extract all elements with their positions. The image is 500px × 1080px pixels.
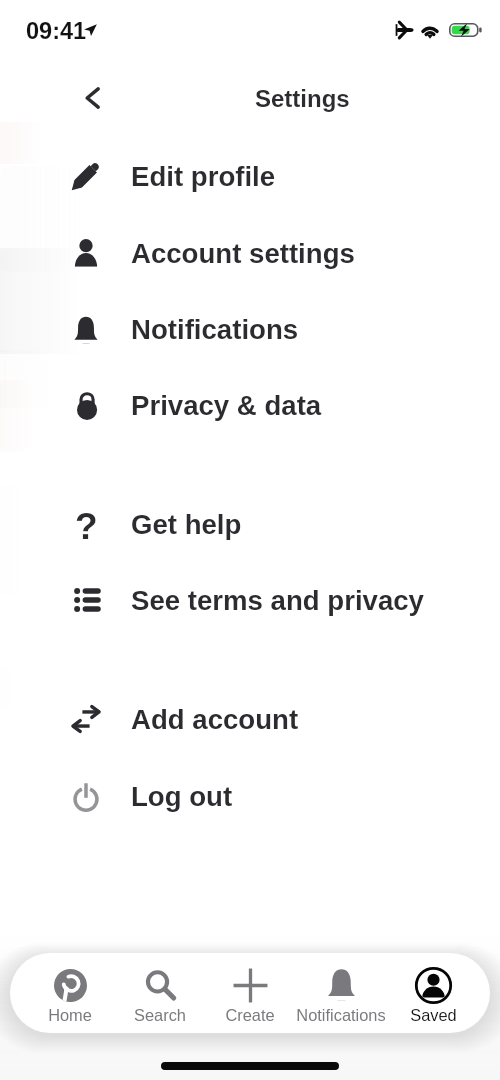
button[interactable]: Search — [112, 953, 208, 1033]
staticText: Log out — [131, 781, 233, 812]
staticText: Settings — [255, 85, 350, 112]
button[interactable]: Notifications — [0, 291, 500, 367]
button[interactable]: Edit profile — [0, 138, 500, 214]
staticText: Home — [48, 1006, 92, 1024]
button[interactable]: Add account — [0, 681, 500, 757]
button[interactable]: Notifications — [293, 953, 389, 1033]
staticText: Edit profile — [131, 161, 276, 192]
button[interactable]: Account settings — [0, 215, 500, 291]
button[interactable]: See terms and privacy — [0, 562, 500, 638]
staticText: Saved — [410, 1006, 457, 1024]
staticText: Get help — [131, 509, 242, 540]
staticText: Add account — [131, 704, 299, 735]
staticText: Notifications — [131, 314, 299, 345]
button[interactable]: Back — [68, 74, 116, 122]
staticText: Privacy & data — [131, 390, 322, 421]
button[interactable]: Create — [202, 953, 298, 1033]
staticText: Create — [225, 1006, 275, 1024]
button[interactable]: Log out — [0, 758, 500, 834]
button[interactable]: Saved — [385, 953, 481, 1033]
staticText: ? — [75, 506, 98, 547]
button[interactable]: Home — [22, 953, 118, 1033]
button[interactable]: ? — [0, 486, 500, 562]
staticText: Account settings — [131, 238, 355, 269]
staticText: See terms and privacy — [131, 585, 424, 616]
button[interactable]: Privacy & data — [0, 367, 500, 443]
staticText: 09:41 — [26, 18, 87, 44]
staticText: Search — [134, 1006, 186, 1024]
staticText: Notifications — [296, 1006, 386, 1024]
